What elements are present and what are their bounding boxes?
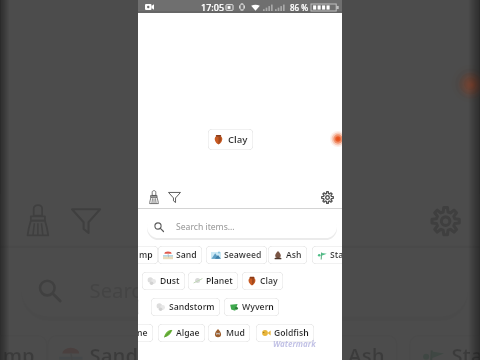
staticText: Sandstorm bbox=[169, 301, 215, 313]
button[interactable]: Ash bbox=[268, 246, 307, 264]
button[interactable]: Planet bbox=[188, 272, 238, 290]
button[interactable]: Seaweed bbox=[206, 246, 267, 264]
staticText: Sand bbox=[176, 249, 197, 261]
button[interactable]: Mud bbox=[208, 324, 250, 342]
staticText: 17:05 bbox=[201, 1, 225, 13]
staticText: Seaweed bbox=[202, 342, 292, 360]
button[interactable]: mp bbox=[0, 335, 47, 360]
staticText: Sta bbox=[451, 342, 480, 360]
staticText: Ash bbox=[348, 342, 386, 360]
button[interactable]: Settings bbox=[316, 186, 338, 208]
button[interactable]: ne bbox=[138, 324, 153, 342]
staticText: Seaweed bbox=[224, 249, 262, 261]
staticText: Search items... bbox=[176, 221, 235, 233]
button[interactable]: Ash bbox=[306, 335, 397, 360]
staticText: Clay bbox=[260, 275, 278, 287]
button[interactable]: Sand bbox=[158, 246, 202, 264]
staticText: ne bbox=[138, 327, 148, 339]
button[interactable]: Algae bbox=[158, 324, 205, 342]
button[interactable]: Clear all bbox=[143, 186, 165, 208]
button[interactable]: Clay bbox=[242, 272, 283, 290]
button[interactable]: Settings bbox=[419, 194, 470, 246]
button[interactable]: Dust bbox=[142, 272, 185, 290]
button[interactable] bbox=[138, 298, 139, 316]
staticText: Search items... bbox=[90, 276, 228, 305]
button[interactable]: Goldfish bbox=[256, 324, 314, 342]
staticText: Goldfish bbox=[274, 327, 309, 339]
button[interactable]: Search items... bbox=[21, 262, 468, 316]
button[interactable]: Wyvern bbox=[224, 298, 279, 316]
button[interactable]: Add item bbox=[330, 131, 342, 147]
staticText: Mud bbox=[226, 327, 245, 339]
staticText: Algae bbox=[176, 327, 200, 339]
staticText: Watermark bbox=[273, 338, 316, 349]
staticText: Dust bbox=[160, 275, 180, 287]
button[interactable]: Sta bbox=[409, 335, 480, 360]
button[interactable]: Clay bbox=[208, 129, 253, 150]
button[interactable]: mp bbox=[138, 246, 158, 264]
staticText: mp bbox=[139, 249, 153, 261]
button[interactable]: Sandstorm bbox=[151, 298, 220, 316]
staticText: Wyvern bbox=[242, 301, 274, 313]
button[interactable]: Add item bbox=[451, 65, 480, 102]
button[interactable]: Filter bbox=[163, 186, 185, 208]
button[interactable]: Sta bbox=[312, 246, 342, 264]
staticText: mp bbox=[3, 342, 35, 360]
staticText: Sand bbox=[90, 342, 139, 360]
staticText: Planet bbox=[206, 275, 233, 287]
button[interactable]: Seaweed bbox=[160, 335, 303, 360]
staticText: Clay bbox=[228, 133, 248, 146]
button[interactable]: Clear all bbox=[12, 194, 64, 246]
staticText: 86 % bbox=[290, 2, 309, 13]
button[interactable]: Search items... bbox=[147, 215, 337, 238]
staticText: Sta bbox=[330, 249, 342, 261]
staticText: Ash bbox=[286, 249, 302, 261]
button[interactable]: Sand bbox=[47, 335, 151, 360]
